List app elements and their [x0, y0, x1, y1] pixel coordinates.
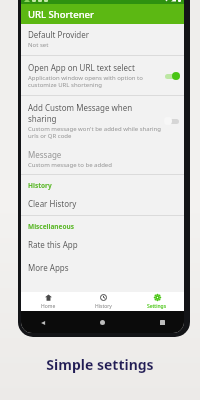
button[interactable]: Settings [130, 292, 184, 311]
staticText: Not set [28, 41, 49, 49]
button[interactable]: Back [38, 318, 47, 327]
button[interactable]: Home [21, 292, 76, 311]
staticText: Message [28, 149, 62, 160]
staticText: Application window opens with option to … [28, 74, 143, 89]
button[interactable]: Rate this App [21, 233, 184, 256]
staticText: Rate this App [28, 239, 78, 250]
staticText: More Apps [28, 262, 69, 273]
staticText: Settings [147, 303, 167, 310]
button[interactable]: Add Custom Message when sharing [21, 96, 184, 146]
staticText: Open App on URL text select [28, 62, 135, 73]
staticText: Home [41, 303, 56, 310]
button[interactable]: Open App on URL text select [21, 56, 184, 95]
button[interactable]: Message [21, 146, 184, 174]
button[interactable]: Clear History [21, 192, 184, 215]
staticText: Simple settings [46, 355, 154, 374]
staticText: History [95, 303, 112, 310]
staticText: Custom message won't be added while shar… [28, 125, 161, 140]
button[interactable]: History [76, 292, 130, 311]
button[interactable]: Default Provider [21, 24, 184, 55]
button[interactable]: Recents [158, 318, 167, 327]
button[interactable]: Switch off [164, 116, 180, 126]
staticText: History [28, 181, 52, 190]
button[interactable]: Home [98, 318, 107, 327]
button[interactable]: More Apps [21, 256, 184, 279]
staticText: Custom message to be added [28, 161, 112, 169]
staticText: Add Custom Message when sharing [28, 102, 161, 124]
staticText: URL Shortener [28, 8, 95, 21]
button[interactable]: Switch on [164, 71, 180, 81]
staticText: Clear History [28, 198, 77, 209]
staticText: Miscellaneous [28, 222, 74, 231]
staticText: Default Provider [28, 29, 90, 40]
